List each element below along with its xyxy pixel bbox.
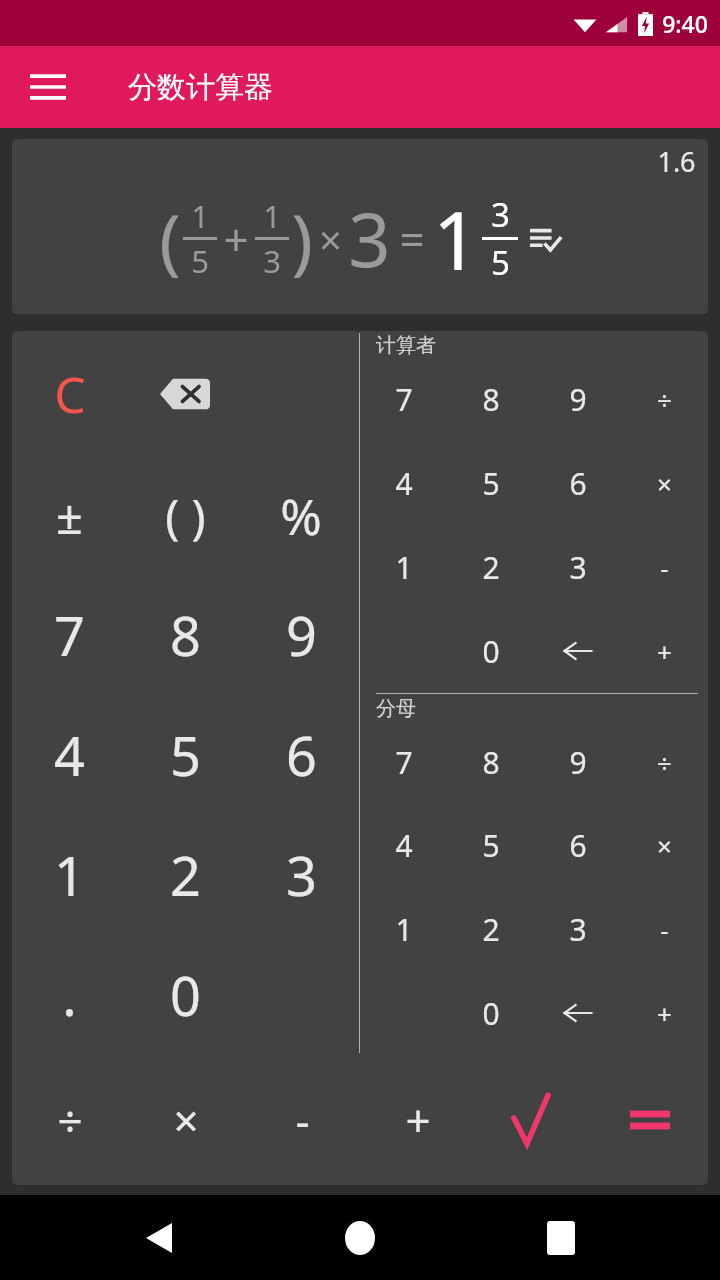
- button[interactable]: 2: [447, 525, 534, 609]
- button[interactable]: 3: [534, 525, 621, 609]
- button[interactable]: ±: [12, 456, 127, 575]
- staticText: 7: [395, 379, 413, 420]
- staticText: 1: [263, 195, 281, 237]
- staticText: 9: [569, 379, 587, 420]
- staticText: 3: [263, 240, 281, 282]
- staticText: 分数计算器: [128, 69, 273, 106]
- button[interactable]: 0: [447, 609, 534, 693]
- button[interactable]: C: [12, 331, 127, 456]
- staticText: 0: [482, 993, 500, 1034]
- staticText: 6: [569, 825, 587, 866]
- button[interactable]: Back: [128, 1207, 190, 1269]
- button[interactable]: 9: [534, 358, 621, 441]
- button[interactable]: +: [360, 1055, 476, 1185]
- button[interactable]: 1: [12, 815, 127, 935]
- staticText: 0: [170, 958, 201, 1032]
- staticText: -: [660, 912, 669, 947]
- button[interactable]: Equals: [592, 1055, 708, 1185]
- staticText: 1.6: [657, 143, 696, 180]
- staticText: 5: [482, 463, 500, 504]
- button[interactable]: Backspace: [534, 971, 621, 1055]
- button[interactable]: 3: [243, 815, 359, 935]
- button[interactable]: ÷: [621, 358, 708, 441]
- staticText: 8: [170, 598, 201, 672]
- button[interactable]: 6: [534, 804, 621, 887]
- button[interactable]: ×: [128, 1055, 244, 1185]
- staticText: -: [295, 1090, 310, 1150]
- button[interactable]: 9: [534, 721, 621, 804]
- button[interactable]: 2: [127, 815, 243, 935]
- button[interactable]: 1.6: [12, 139, 708, 314]
- button[interactable]: Home: [329, 1207, 391, 1269]
- button[interactable]: -: [244, 1055, 360, 1185]
- button[interactable]: 9: [243, 575, 359, 695]
- button[interactable]: 3: [534, 887, 621, 971]
- staticText: 2: [482, 909, 500, 950]
- button[interactable]: %: [243, 456, 359, 575]
- button[interactable]: 2: [447, 887, 534, 971]
- button[interactable]: Square root: [476, 1055, 592, 1185]
- staticText: 1: [433, 184, 479, 293]
- button[interactable]: 8: [447, 721, 534, 804]
- button[interactable]: ( ): [127, 456, 243, 575]
- staticText: 3: [569, 909, 587, 950]
- button[interactable]: 8: [447, 358, 534, 441]
- button[interactable]: 6: [243, 695, 359, 815]
- staticText: ±: [56, 484, 83, 548]
- button[interactable]: ÷: [12, 1055, 128, 1185]
- button[interactable]: -: [621, 887, 708, 971]
- button[interactable]: 1: [360, 887, 447, 971]
- staticText: 2: [482, 547, 500, 588]
- button[interactable]: Backspace: [127, 331, 243, 456]
- staticText: ( ): [165, 484, 206, 548]
- staticText: 8: [482, 379, 500, 420]
- staticText: 分母: [376, 696, 416, 721]
- staticText: 3: [348, 188, 391, 289]
- button[interactable]: -: [621, 525, 708, 609]
- button[interactable]: Show result options: [528, 222, 562, 256]
- staticText: .: [62, 958, 77, 1032]
- button[interactable]: ÷: [621, 721, 708, 804]
- staticText: 计算者: [376, 333, 436, 358]
- button[interactable]: 5: [447, 804, 534, 887]
- button[interactable]: +: [621, 971, 708, 1055]
- staticText: ): [291, 190, 313, 288]
- staticText: 1: [54, 838, 85, 912]
- button[interactable]: Recent apps: [530, 1207, 592, 1269]
- button[interactable]: 5: [127, 695, 243, 815]
- button[interactable]: Backspace: [534, 609, 621, 693]
- staticText: ÷: [57, 1090, 83, 1150]
- button[interactable]: 6: [534, 441, 621, 525]
- staticText: -: [660, 550, 669, 585]
- button[interactable]: ×: [621, 804, 708, 887]
- button[interactable]: ×: [621, 441, 708, 525]
- staticText: %: [280, 482, 322, 550]
- staticText: (: [159, 190, 181, 288]
- staticText: 8: [482, 742, 500, 783]
- staticText: 1: [395, 547, 413, 588]
- staticText: ×: [319, 212, 342, 266]
- staticText: 7: [54, 598, 85, 672]
- button[interactable]: .: [12, 935, 127, 1055]
- staticText: ×: [657, 828, 672, 863]
- staticText: +: [223, 209, 249, 269]
- button[interactable]: 5: [447, 441, 534, 525]
- button[interactable]: 7: [12, 575, 127, 695]
- button[interactable]: 0: [447, 971, 534, 1055]
- button[interactable]: 4: [360, 441, 447, 525]
- button[interactable]: +: [621, 609, 708, 693]
- button[interactable]: 0: [127, 935, 243, 1055]
- button[interactable]: 4: [360, 804, 447, 887]
- staticText: 0: [482, 631, 500, 672]
- button[interactable]: 4: [12, 695, 127, 815]
- staticText: 4: [395, 463, 413, 504]
- button[interactable]: 7: [360, 358, 447, 441]
- button[interactable]: Open navigation menu: [18, 57, 78, 117]
- button[interactable]: 1: [360, 525, 447, 609]
- button[interactable]: 8: [127, 575, 243, 695]
- staticText: ×: [173, 1090, 199, 1150]
- staticText: 5: [491, 240, 510, 285]
- staticText: 3: [491, 192, 510, 237]
- staticText: 7: [395, 742, 413, 783]
- button[interactable]: 7: [360, 721, 447, 804]
